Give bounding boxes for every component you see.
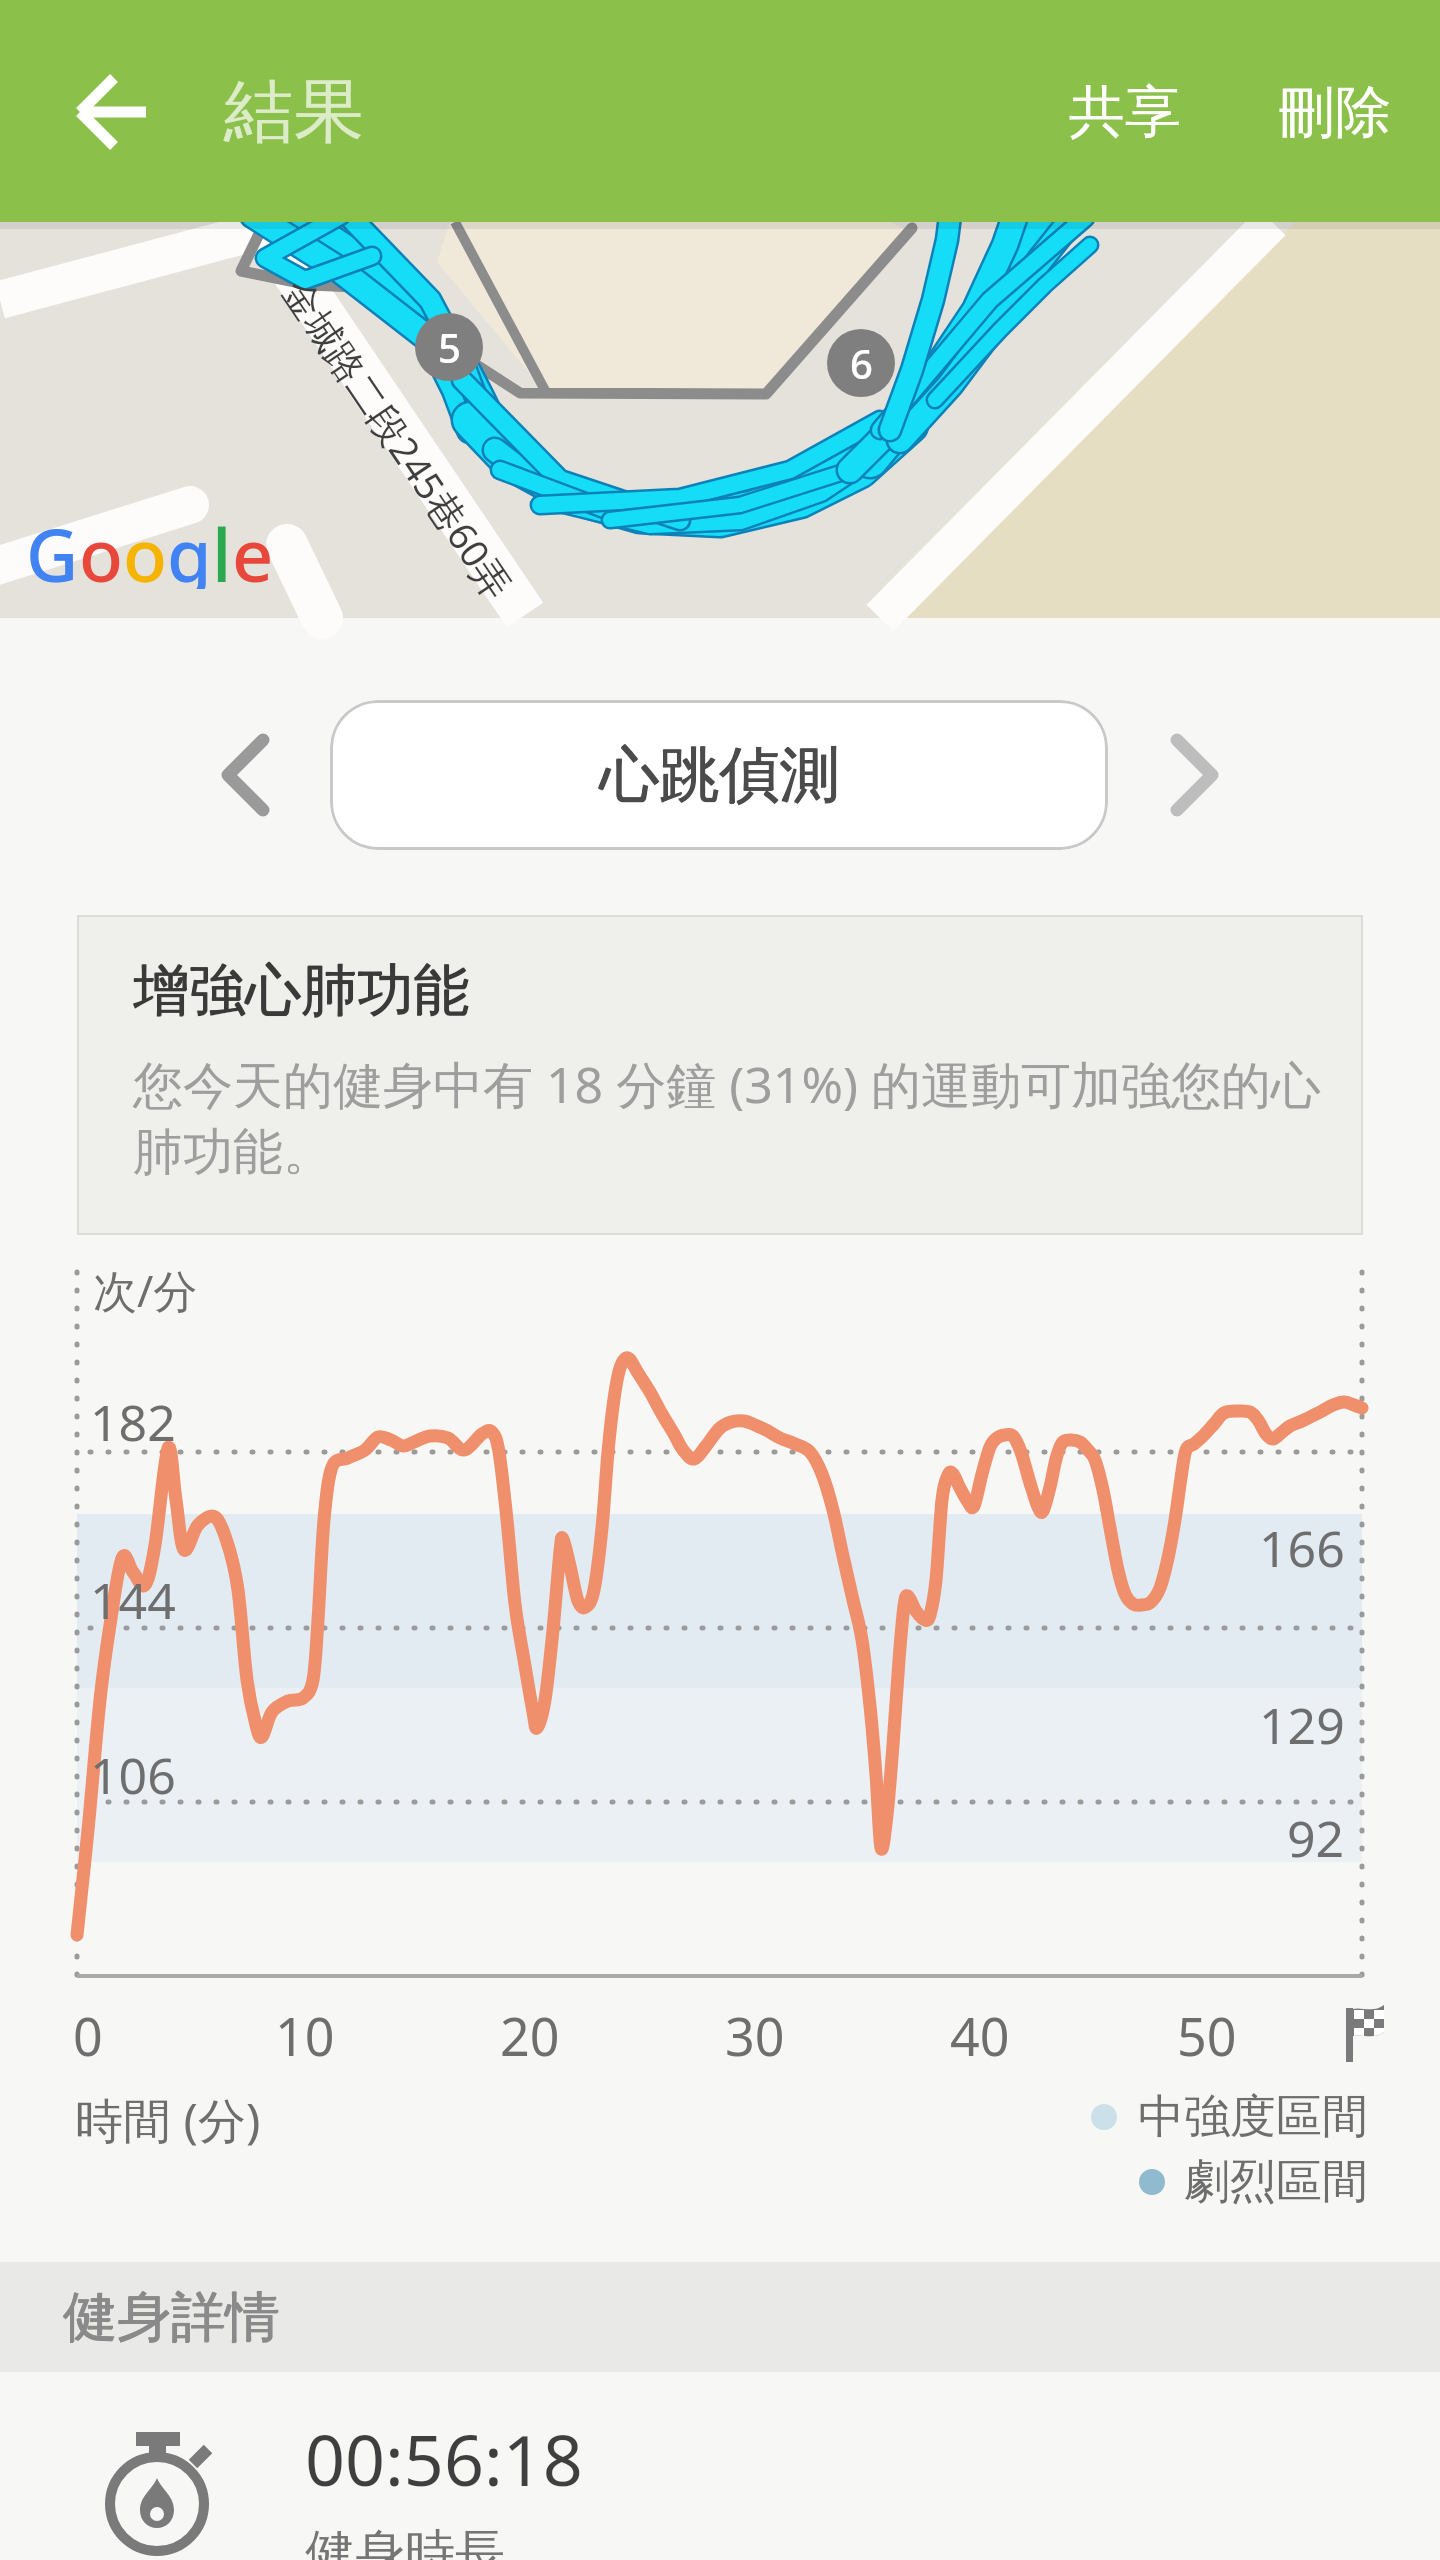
staticText: 增強心肺功能 — [133, 956, 469, 1027]
staticText: 129 — [1259, 1691, 1345, 1759]
button[interactable] — [1150, 715, 1250, 835]
staticText: 10 — [275, 2000, 335, 2070]
button[interactable] — [55, 85, 170, 200]
staticText: 時間 (分) — [75, 2087, 261, 2153]
staticText: 50 — [1177, 2000, 1237, 2070]
staticText: e — [232, 505, 274, 589]
staticText: 5 — [438, 320, 461, 374]
staticText: 0 — [73, 2000, 103, 2070]
staticText: 30 — [725, 2000, 785, 2070]
staticText: o — [123, 505, 167, 589]
staticText: 6 — [850, 336, 873, 390]
staticText: 20 — [500, 2000, 560, 2070]
button[interactable]: 共享 — [1060, 72, 1190, 152]
staticText: 健身詳情 — [64, 2283, 280, 2351]
staticText: 刪除 — [1279, 77, 1391, 148]
staticText: 次/分 — [93, 1260, 198, 1320]
staticText: 心跳偵測 — [599, 737, 839, 813]
staticText: 166 — [1259, 1514, 1345, 1582]
staticText: 共享 — [1069, 77, 1181, 148]
staticText: o — [79, 505, 123, 589]
staticText: 健身時長 — [305, 2522, 505, 2560]
button[interactable]: 心跳偵測 — [330, 700, 1108, 850]
staticText: 增強心肺功能 — [133, 955, 469, 1026]
staticText: 劇烈區間 — [1184, 2153, 1368, 2211]
staticText: 您今天的健身中有 18 分鐘 (31%) 的運動可加強您的心 肺功能。 — [133, 1050, 1321, 1184]
button[interactable]: 刪除 — [1270, 72, 1400, 152]
staticText: 182 — [90, 1388, 176, 1456]
staticText: 金城路二段245巷60弄 — [272, 268, 525, 608]
staticText: 40 — [950, 2000, 1010, 2070]
staticText: 中強度區間 — [1138, 2088, 1368, 2146]
staticText: G — [26, 505, 79, 589]
staticText: 增強心肺功能 — [134, 955, 470, 1026]
button[interactable] — [200, 715, 300, 835]
staticText: 結果 — [224, 68, 364, 156]
staticText: 健身詳情 — [63, 2284, 279, 2352]
staticText: g — [167, 505, 212, 589]
staticText: l — [212, 505, 232, 589]
staticText: 144 — [90, 1566, 176, 1634]
staticText: 92 — [1287, 1804, 1345, 1872]
staticText: 106 — [90, 1741, 176, 1809]
staticText: 心跳偵測 — [600, 737, 840, 813]
staticText: 00:56:18 — [305, 2411, 583, 2506]
staticText: 心跳偵測 — [599, 738, 839, 814]
staticText: 健身詳情 — [63, 2283, 279, 2351]
